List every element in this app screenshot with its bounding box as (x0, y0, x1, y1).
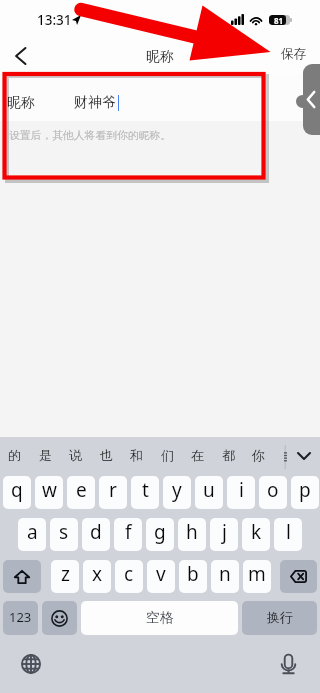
staticText: y (172, 477, 182, 503)
staticText: i (239, 477, 244, 503)
button[interactable]: 删除 (280, 560, 317, 593)
button[interactable]: 大写切换 (3, 560, 41, 593)
button[interactable]: 展开侧栏 (303, 64, 320, 135)
staticText: 保存 (281, 46, 306, 62)
staticText: 也 (100, 447, 113, 463)
staticText: j (222, 519, 227, 545)
button[interactable]: t (131, 476, 159, 509)
button[interactable]: p (291, 476, 319, 509)
staticText: k (251, 519, 262, 545)
staticText: x (92, 561, 103, 587)
button[interactable]: x (83, 560, 111, 593)
staticText: g (154, 519, 166, 545)
staticText: s (59, 519, 69, 545)
button[interactable]: 123 (3, 601, 38, 635)
staticText: w (42, 477, 57, 503)
button[interactable]: 表情 (42, 601, 77, 635)
button[interactable]: 的 (0, 437, 30, 476)
button[interactable]: h (178, 518, 206, 551)
staticText: z (61, 561, 70, 587)
staticText: 的 (8, 447, 21, 463)
staticText: q (11, 477, 23, 503)
staticText: n (219, 561, 231, 587)
button[interactable]: v (147, 560, 175, 593)
button[interactable]: b (179, 560, 207, 593)
button[interactable]: 空格 (81, 601, 238, 635)
staticText: 和 (130, 447, 143, 463)
button[interactable]: l (274, 518, 302, 551)
staticText: 昵称 (146, 48, 174, 66)
button[interactable]: 也 (91, 437, 122, 476)
staticText: 13:31 (37, 11, 72, 29)
button[interactable]: 收起候选词 (289, 442, 318, 470)
button[interactable]: j (210, 518, 238, 551)
button[interactable]: d (82, 518, 110, 551)
staticText: 你 (252, 447, 265, 463)
button[interactable]: z (51, 560, 79, 593)
button[interactable]: k (242, 518, 270, 551)
staticText: o (267, 477, 279, 503)
button[interactable]: q (3, 476, 31, 509)
button[interactable]: 们 (152, 437, 183, 476)
staticText: d (90, 519, 102, 545)
staticText: 昵称 (7, 94, 35, 112)
staticText: h (186, 519, 198, 545)
button[interactable]: a (18, 518, 46, 551)
button[interactable]: u (195, 476, 223, 509)
button[interactable]: f (114, 518, 142, 551)
staticText: 在 (191, 447, 204, 463)
staticText: c (124, 561, 134, 587)
staticText: t (142, 477, 149, 503)
button[interactable]: m (243, 560, 271, 593)
button[interactable]: c (115, 560, 143, 593)
button[interactable]: 语音输入 (274, 650, 302, 678)
staticText: 设置后，其他人将看到你的昵称。 (9, 129, 171, 143)
button[interactable]: 切换键盘 (17, 650, 45, 678)
button[interactable]: e (67, 476, 95, 509)
staticText: v (156, 561, 166, 587)
staticText: 81 (274, 15, 284, 25)
staticText: p (299, 477, 311, 503)
button[interactable]: y (163, 476, 191, 509)
staticText: u (203, 477, 215, 503)
button[interactable]: 返回 (6, 40, 34, 72)
staticText: b (187, 561, 199, 587)
staticText: 123 (9, 608, 32, 626)
button[interactable]: 都 (213, 437, 244, 476)
button[interactable]: n (211, 560, 239, 593)
staticText: 们 (161, 447, 174, 463)
staticText: m (248, 561, 266, 587)
staticText: a (27, 519, 38, 545)
button[interactable]: w (35, 476, 63, 509)
staticText: 财神爷 (74, 94, 116, 112)
staticText: e (76, 477, 87, 503)
button[interactable]: 说 (60, 437, 91, 476)
button[interactable]: g (146, 518, 174, 551)
button[interactable]: 你 (243, 437, 274, 476)
button[interactable]: o (259, 476, 287, 509)
button[interactable]: s (50, 518, 78, 551)
staticText: l (286, 519, 291, 545)
staticText: r (109, 477, 117, 503)
button[interactable]: 和 (121, 437, 152, 476)
staticText: 说 (69, 447, 82, 463)
staticText: f (125, 519, 132, 545)
button[interactable]: 换行 (242, 601, 317, 635)
button[interactable]: r (99, 476, 127, 509)
button[interactable]: 在 (182, 437, 213, 476)
staticText: 是 (39, 447, 52, 463)
staticText: 空格 (146, 609, 174, 626)
staticText: 换行 (267, 609, 293, 625)
button[interactable]: i (227, 476, 255, 509)
staticText: 都 (222, 447, 235, 463)
button[interactable]: 是 (30, 437, 61, 476)
button[interactable]: 保存 (275, 41, 312, 67)
